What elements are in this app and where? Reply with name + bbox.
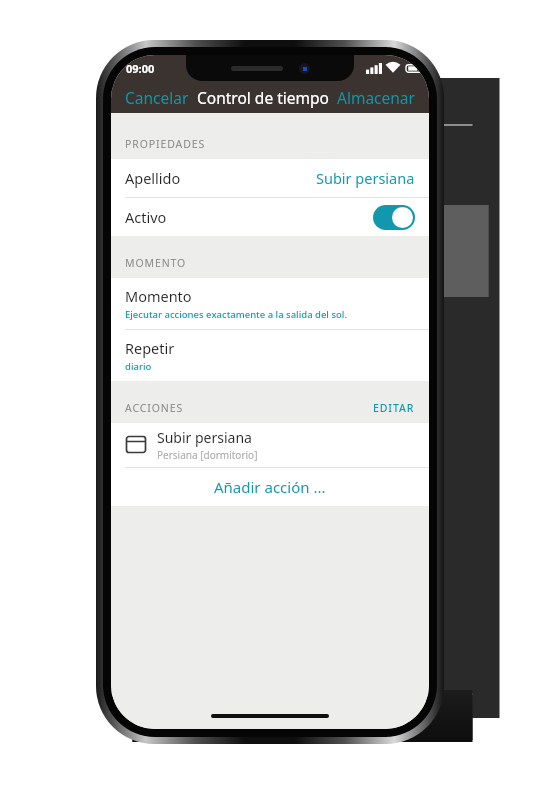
staticText: Persiana [dormitorio] [157, 448, 258, 462]
staticText: Subir persiana [316, 168, 415, 188]
staticText: 09:00 [126, 61, 155, 76]
button[interactable]: Añadir acción ... [111, 468, 429, 506]
staticText: MOMENTO [125, 256, 187, 270]
staticText: Repetir [125, 338, 175, 358]
other: Activo [373, 205, 415, 230]
staticText: Ejecutar acciones exactamente a la salid… [125, 308, 347, 321]
staticText: Añadir acción ... [214, 477, 326, 497]
button[interactable]: Momento [111, 278, 429, 329]
staticText: Momento [125, 286, 192, 306]
staticText: Control de tiempo [197, 87, 329, 108]
staticText: ACCIONES [125, 401, 184, 415]
staticText: Activo [125, 207, 167, 227]
button[interactable]: Repetir [111, 330, 429, 381]
staticText: Apellido [125, 168, 181, 188]
staticText: diario [125, 360, 152, 373]
staticText: Almacenar [337, 87, 415, 108]
button[interactable]: EDITAR [373, 401, 415, 415]
staticText: PROPIEDADES [125, 137, 206, 151]
button[interactable]: Almacenar [334, 82, 418, 113]
button[interactable]: Subir persiana [111, 423, 429, 467]
staticText: EDITAR [373, 401, 415, 415]
button[interactable]: Cancelar [122, 82, 192, 113]
staticText: Cancelar [125, 87, 189, 108]
button[interactable]: Apellido [111, 159, 429, 197]
staticText: Subir persiana [157, 428, 252, 447]
button[interactable]: Activo [111, 198, 429, 236]
